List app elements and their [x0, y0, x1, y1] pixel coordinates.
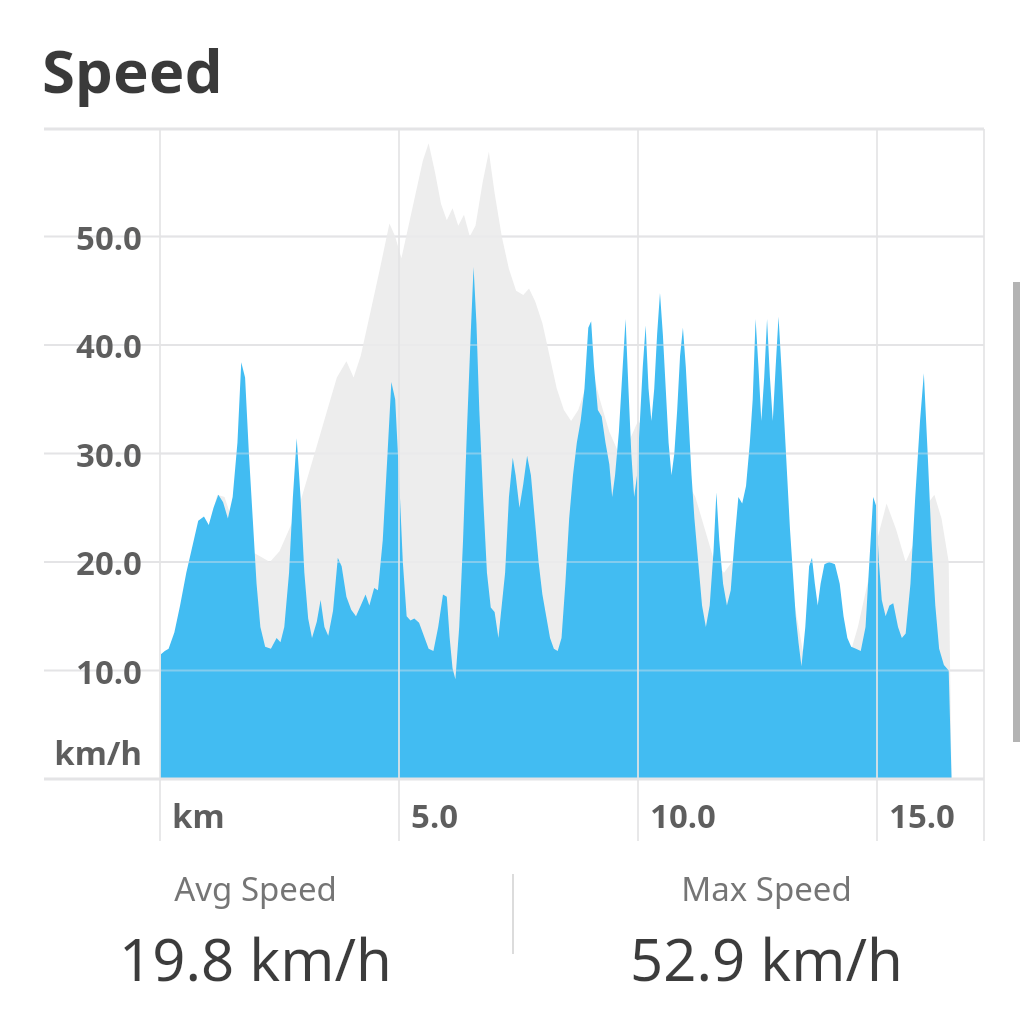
staticText: 5.0 — [411, 793, 459, 838]
staticText: 52.9 km/h — [630, 919, 903, 998]
staticText: 40.0 — [30, 323, 142, 368]
other: Speed over distance chart — [0, 118, 1022, 830]
staticText: 30.0 — [30, 432, 142, 477]
staticText: Speed — [42, 29, 223, 111]
staticText: 10.0 — [30, 649, 142, 694]
staticText: km/h — [30, 730, 142, 775]
staticText: 20.0 — [30, 540, 142, 585]
staticText: km — [172, 793, 225, 838]
staticText: 10.0 — [650, 793, 716, 838]
button[interactable]: Avg Speed — [0, 848, 511, 998]
button[interactable]: Max Speed — [511, 848, 1022, 998]
staticText: Avg Speed — [174, 866, 337, 911]
staticText: 19.8 km/h — [119, 919, 392, 998]
staticText: 15.0 — [889, 793, 955, 838]
staticText: 50.0 — [30, 215, 142, 260]
staticText: Max Speed — [681, 866, 852, 911]
